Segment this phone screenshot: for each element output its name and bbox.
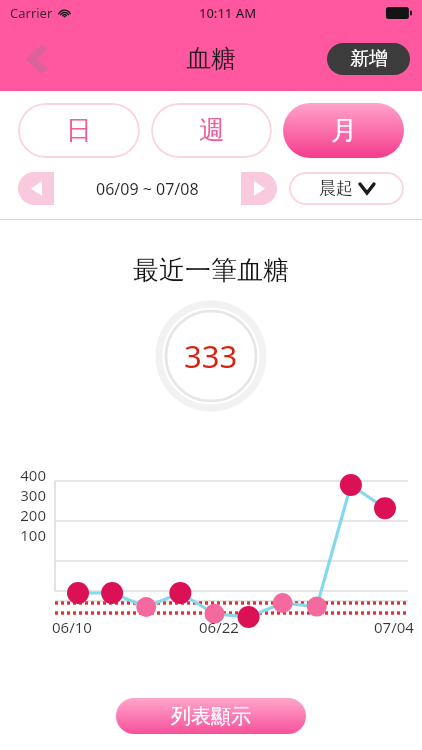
- staticText: 最近一筆血糖: [0, 254, 422, 287]
- staticText: 100: [8, 525, 46, 545]
- staticText: 07/04: [374, 617, 414, 637]
- button[interactable]: 新增: [327, 43, 410, 75]
- staticText: 06/22: [199, 617, 239, 637]
- staticText: 日: [66, 114, 92, 147]
- button[interactable]: Previous period: [18, 172, 54, 205]
- staticText: 200: [8, 505, 46, 525]
- button[interactable]: 列表顯示: [116, 698, 306, 734]
- button[interactable]: 週: [151, 103, 272, 158]
- staticText: 晨起: [319, 178, 353, 199]
- staticText: 新增: [350, 47, 388, 71]
- staticText: 月: [331, 114, 357, 147]
- button[interactable]: 月: [283, 103, 404, 158]
- staticText: 400: [8, 465, 46, 485]
- button[interactable]: Next period: [241, 172, 277, 205]
- button[interactable]: 06/09 ~ 07/08: [54, 172, 241, 205]
- button[interactable]: Back: [14, 36, 60, 82]
- staticText: 10:11 AM: [199, 4, 257, 22]
- staticText: 血糖: [186, 43, 236, 74]
- staticText: 列表顯示: [171, 704, 251, 729]
- staticText: 週: [199, 114, 225, 147]
- staticText: 06/10: [52, 617, 92, 637]
- staticText: 06/09 ~ 07/08: [96, 178, 199, 200]
- staticText: 333: [184, 335, 238, 377]
- staticText: 300: [8, 485, 46, 505]
- button[interactable]: 日: [18, 103, 140, 158]
- staticText: Carrier: [10, 4, 53, 22]
- button[interactable]: 晨起: [289, 172, 404, 205]
